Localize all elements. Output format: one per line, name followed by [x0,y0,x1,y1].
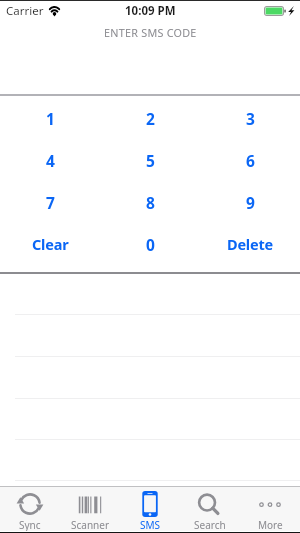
staticText: 4 [46,150,55,171]
button[interactable]: Scanner [60,487,120,531]
staticText: Scanner [71,518,110,531]
button[interactable]: 1 [0,97,100,139]
staticText: Delete [227,234,273,254]
staticText: 9 [246,192,255,213]
staticText: SMS [140,518,161,531]
button[interactable]: 6 [200,139,300,181]
staticText: Sync [19,518,41,531]
staticText: 0 [146,234,155,255]
staticText: Search [194,518,226,531]
button[interactable]: Delete [200,223,300,265]
staticText: Carrier [6,3,44,19]
button[interactable]: SMS [120,487,180,531]
staticText: 10:09 PM [125,3,176,19]
button[interactable]: More [240,487,300,531]
button[interactable]: 3 [200,97,300,139]
button[interactable]: 7 [0,181,100,223]
button[interactable]: Clear [0,223,100,265]
button[interactable]: 0 [100,223,200,265]
button[interactable]: 9 [200,181,300,223]
button[interactable]: 4 [0,139,100,181]
staticText: 7 [46,192,55,213]
staticText: 3 [246,108,255,129]
button[interactable]: 5 [100,139,200,181]
staticText: 2 [146,108,155,129]
button[interactable]: 8 [100,181,200,223]
staticText: 1 [46,108,55,129]
staticText: Clear [32,234,69,254]
staticText: 8 [146,192,155,213]
button[interactable]: 2 [100,97,200,139]
button[interactable]: Search [180,487,240,531]
staticText: 5 [146,150,155,171]
staticText: ENTER SMS CODE [104,25,197,40]
staticText: 6 [246,150,255,171]
staticText: More [258,518,283,531]
button[interactable]: Sync [0,487,60,531]
